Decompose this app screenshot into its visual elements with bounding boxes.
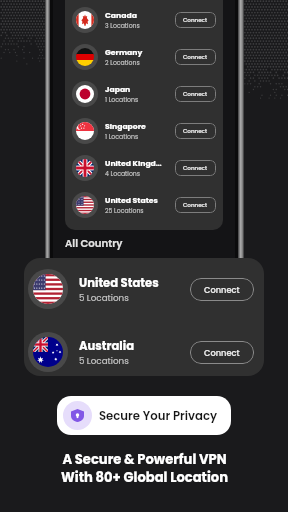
button[interactable]: Connect (175, 160, 216, 176)
button[interactable]: Singapore (65, 112, 223, 149)
staticText: Japan (105, 84, 131, 95)
button[interactable]: Connect (190, 278, 254, 301)
button[interactable]: United Kingdom (65, 149, 223, 186)
staticText: United States (105, 195, 158, 206)
button[interactable]: Australia (24, 328, 264, 376)
staticText: 5 Locations (79, 355, 129, 367)
staticText: Canada (105, 10, 137, 21)
staticText: 3 Locations (105, 21, 140, 30)
staticText: A Secure & Powerful VPN (62, 450, 227, 468)
staticText: Connect (183, 201, 208, 209)
staticText: 5 Locations (79, 292, 129, 304)
staticText: Germany (105, 47, 143, 58)
staticText: Connect (183, 127, 208, 135)
button[interactable]: Japan (65, 75, 223, 112)
button[interactable]: United States (24, 265, 264, 313)
button[interactable]: United States (65, 186, 223, 223)
button[interactable]: Connect (175, 49, 216, 65)
staticText: Secure Your Privacy (99, 408, 218, 424)
button[interactable]: Connect (175, 12, 216, 28)
staticText: Connect (204, 284, 240, 296)
staticText: 4 Locations (105, 169, 141, 178)
button[interactable]: Canada (65, 1, 223, 38)
staticText: United States (79, 275, 159, 291)
staticText: 25 Locations (105, 206, 144, 215)
button[interactable]: Connect (175, 123, 216, 139)
button[interactable]: Germany (65, 38, 223, 75)
button[interactable]: Secure Your Privacy (57, 396, 231, 435)
staticText: Connect (183, 90, 208, 98)
button[interactable]: Connect (175, 86, 216, 102)
button[interactable]: Connect (175, 197, 216, 213)
staticText: Connect (204, 347, 240, 359)
staticText: Singapore (105, 121, 146, 132)
staticText: 1 Locations (105, 132, 139, 141)
staticText: Connect (183, 53, 208, 61)
button[interactable]: Connect (190, 341, 254, 364)
staticText: Connect (183, 164, 208, 172)
staticText: United Kingdom (105, 158, 164, 169)
staticText: 2 Locations (105, 58, 140, 67)
staticText: Australia (79, 338, 135, 354)
staticText: Connect (183, 16, 208, 24)
staticText: With 80+ Global Location (61, 468, 228, 486)
staticText: 1 Locations (105, 95, 139, 104)
staticText: All Country (65, 236, 123, 250)
